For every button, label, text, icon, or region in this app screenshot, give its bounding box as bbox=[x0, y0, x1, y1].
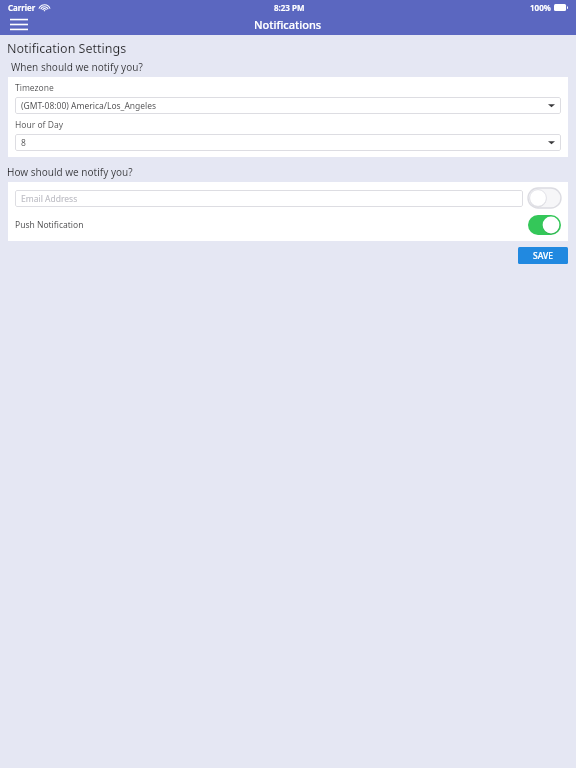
button[interactable]: Email notifications bbox=[528, 188, 561, 208]
staticText: Notifications bbox=[254, 17, 322, 32]
staticText: Carrier bbox=[8, 2, 36, 13]
button[interactable]: Email Address bbox=[15, 190, 523, 207]
button[interactable]: Push notifications bbox=[528, 215, 561, 235]
button[interactable]: 8 bbox=[15, 134, 561, 151]
staticText: Timezone bbox=[15, 82, 54, 94]
button[interactable]: Open navigation menu bbox=[4, 14, 34, 35]
staticText: 8 bbox=[21, 137, 26, 149]
staticText: Email Address bbox=[21, 193, 78, 205]
staticText: SAVE bbox=[533, 250, 553, 262]
staticText: Hour of Day bbox=[15, 119, 64, 131]
staticText: Notification Settings bbox=[7, 40, 127, 57]
staticText: (GMT-08:00) America/Los_Angeles bbox=[21, 100, 157, 112]
staticText: 8:23 PM bbox=[274, 2, 305, 13]
staticText: How should we notify you? bbox=[7, 165, 133, 179]
staticText: Push Notification bbox=[15, 219, 84, 231]
staticText: 100% bbox=[530, 2, 551, 13]
button[interactable]: SAVE bbox=[518, 247, 568, 264]
button[interactable]: (GMT-08:00) America/Los_Angeles bbox=[15, 97, 561, 114]
staticText: When should we notify you? bbox=[11, 60, 143, 74]
